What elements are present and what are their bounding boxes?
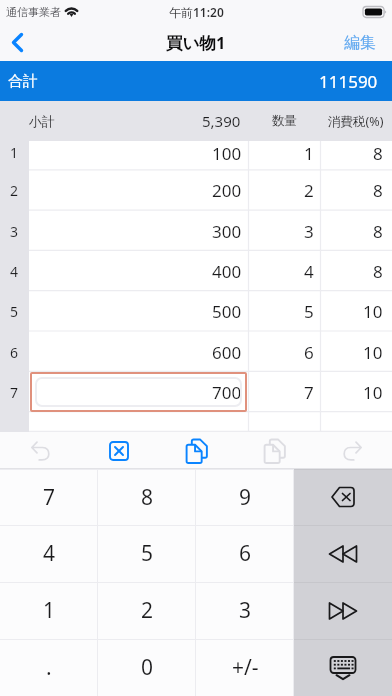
staticText: 8 [373, 179, 383, 202]
staticText: 数量 [272, 113, 297, 129]
staticText: 3 [304, 220, 314, 243]
button[interactable]: Back [0, 23, 40, 61]
staticText: 300 [212, 220, 242, 243]
staticText: 8 [373, 260, 383, 283]
staticText: 10 [363, 341, 383, 364]
button[interactable]: 4 [0, 525, 98, 582]
button[interactable]: 4 [0, 251, 392, 291]
staticText: 合計 [8, 72, 38, 91]
staticText: +/- [232, 653, 259, 682]
staticText: 7 [43, 483, 56, 512]
button[interactable]: Undo [0, 432, 79, 469]
staticText: 4 [43, 539, 56, 568]
button[interactable]: 8 [98, 469, 196, 525]
staticText: 6 [304, 341, 314, 364]
staticText: 600 [212, 341, 242, 364]
staticText: 100 [212, 142, 242, 165]
staticText: 200 [212, 179, 242, 202]
button[interactable]: Clear [79, 432, 158, 469]
staticText: 消費税(%) [328, 113, 384, 130]
button[interactable]: Next [294, 582, 392, 639]
staticText: 午前11:20 [169, 4, 224, 20]
staticText: . [46, 653, 52, 682]
button[interactable]: 3 [196, 582, 294, 639]
staticText: 9 [239, 483, 252, 512]
button[interactable]: 0 [98, 639, 196, 696]
button[interactable]: 小計 [0, 101, 392, 141]
staticText: 7 [10, 383, 19, 402]
staticText: 1 [10, 143, 19, 162]
staticText: 買い物1 [166, 31, 226, 54]
staticText: 500 [212, 300, 242, 323]
button[interactable]: 9 [196, 469, 294, 525]
staticText: 5 [10, 302, 19, 321]
staticText: 10 [363, 381, 383, 404]
staticText: 400 [212, 260, 242, 283]
staticText: 1 [43, 596, 56, 625]
staticText: 8 [141, 483, 154, 512]
button[interactable] [0, 412, 392, 432]
button[interactable]: 2 [98, 582, 196, 639]
button[interactable]: 6 [0, 332, 392, 372]
button[interactable]: Redo [314, 432, 392, 469]
staticText: 0 [141, 653, 154, 682]
staticText: 2 [10, 181, 19, 200]
staticText: 7 [304, 381, 314, 404]
staticText: 6 [10, 343, 19, 362]
staticText: 5 [141, 539, 154, 568]
button[interactable]: 7 [0, 372, 392, 412]
button[interactable]: +/- [196, 639, 294, 696]
button[interactable]: 編集 [344, 23, 376, 61]
button[interactable]: 合計 [0, 61, 392, 101]
button[interactable]: Previous [294, 525, 392, 582]
staticText: 5,390 [202, 111, 241, 131]
staticText: 4 [304, 260, 314, 283]
button[interactable]: Delete [294, 469, 392, 525]
staticText: 編集 [344, 33, 376, 53]
button[interactable]: 6 [196, 525, 294, 582]
staticText: 2 [141, 596, 154, 625]
button[interactable]: 1 [0, 582, 98, 639]
staticText: 2 [304, 179, 314, 202]
button[interactable]: 7 [0, 469, 98, 525]
staticText: 111590 [319, 70, 378, 93]
staticText: 4 [10, 262, 19, 281]
staticText: 小計 [29, 113, 55, 129]
button[interactable]: . [0, 639, 98, 696]
button[interactable]: 1 [0, 141, 392, 171]
staticText: 8 [373, 142, 383, 165]
staticText: 5 [304, 300, 314, 323]
button[interactable]: Paste [236, 432, 314, 469]
staticText: 3 [239, 596, 252, 625]
staticText: 8 [373, 220, 383, 243]
staticText: 700 [212, 381, 242, 404]
button[interactable]: 5 [98, 525, 196, 582]
staticText: 3 [10, 222, 19, 241]
button[interactable]: 3 [0, 211, 392, 251]
button[interactable]: 5 [0, 291, 392, 331]
button[interactable]: Copy [158, 432, 236, 469]
staticText: 10 [363, 300, 383, 323]
staticText: 1 [304, 142, 314, 165]
staticText: 通信事業者 [6, 5, 61, 19]
staticText: 6 [239, 539, 252, 568]
button[interactable]: 2 [0, 170, 392, 210]
button[interactable]: Hide keyboard [294, 639, 392, 696]
